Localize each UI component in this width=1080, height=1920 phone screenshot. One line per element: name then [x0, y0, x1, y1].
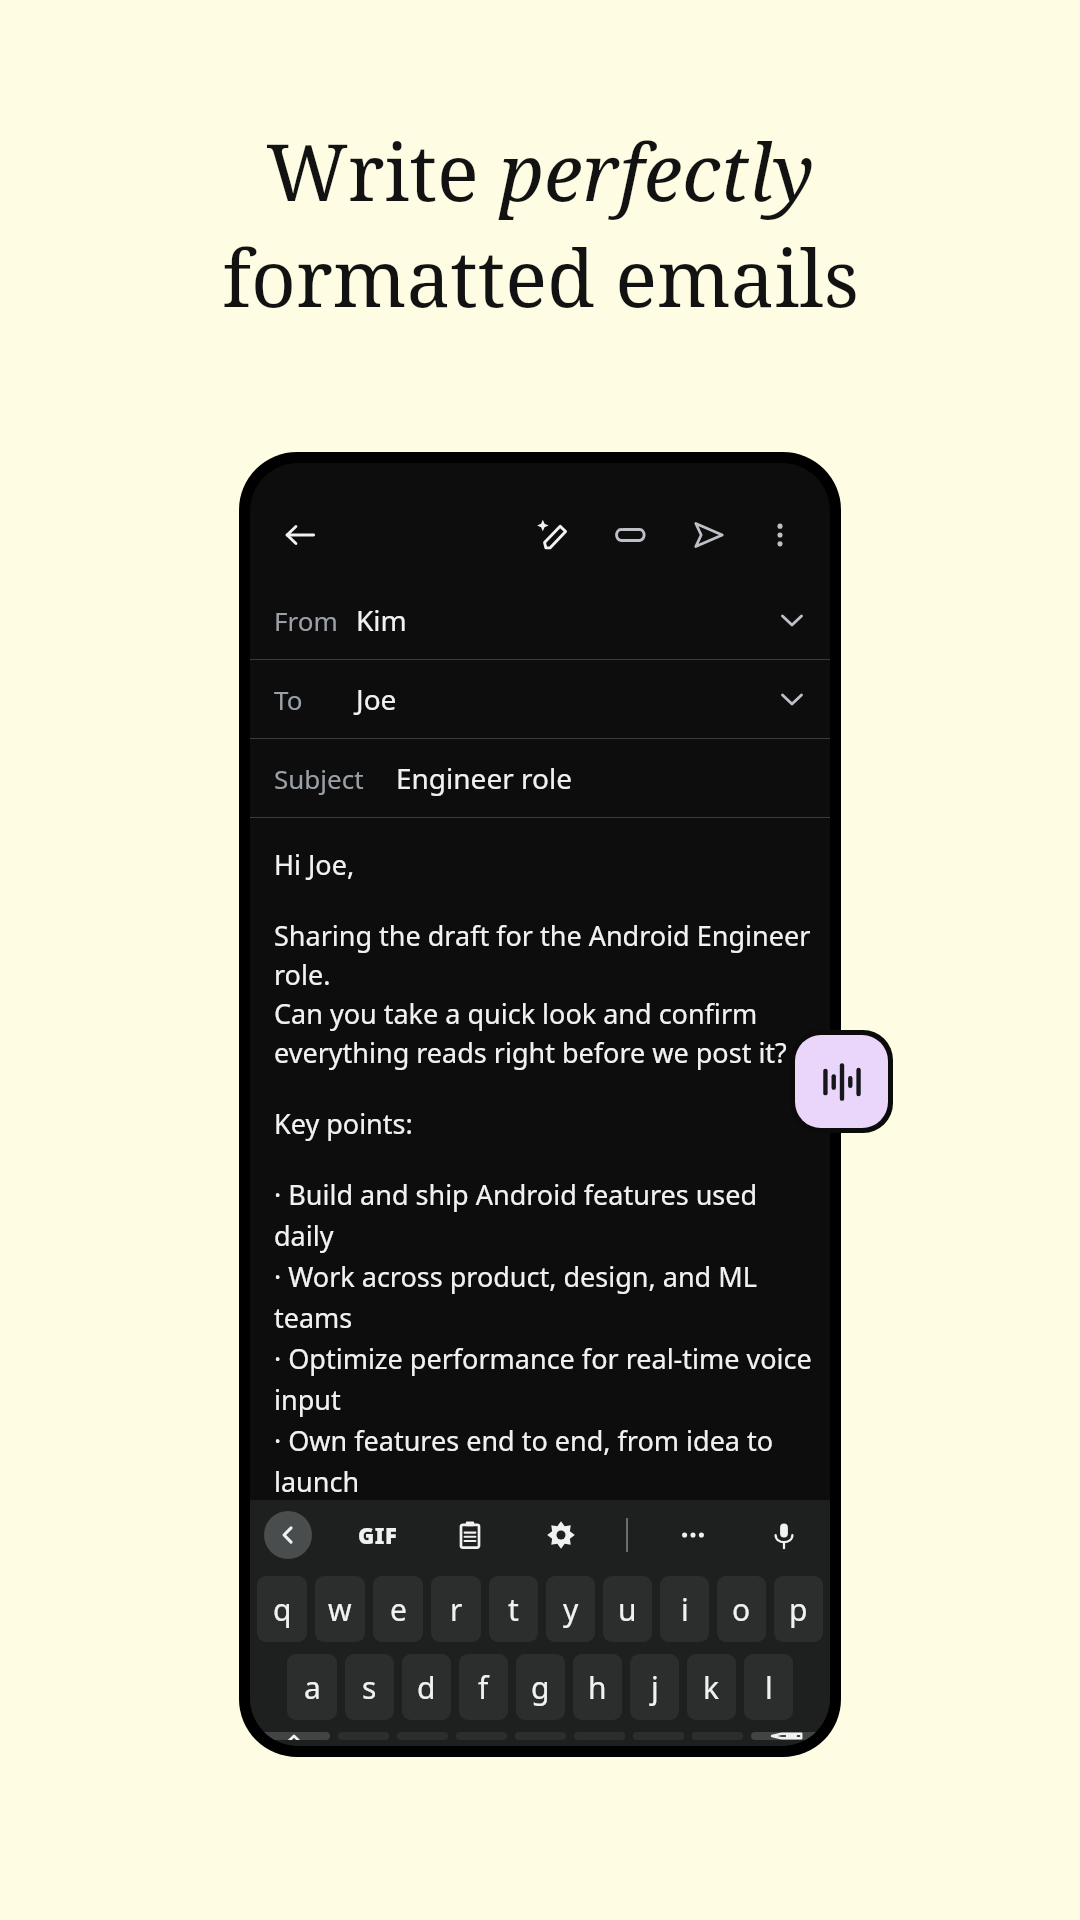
button[interactable]: g — [516, 1654, 565, 1720]
staticText: e — [390, 1589, 407, 1630]
staticText: w — [328, 1589, 352, 1630]
staticText: u — [618, 1589, 637, 1630]
staticText: Key points: — [274, 1105, 413, 1142]
staticText: k — [703, 1667, 720, 1708]
staticText: Hi Joe, — [274, 846, 355, 883]
button[interactable]: h — [573, 1654, 622, 1720]
staticText: y — [563, 1589, 579, 1630]
staticText: p — [789, 1589, 808, 1630]
button[interactable]: Clipboard — [444, 1509, 496, 1561]
staticText: GIF — [358, 1520, 398, 1550]
staticText: d — [417, 1667, 436, 1708]
button[interactable]: From — [250, 581, 830, 659]
staticText: h — [588, 1667, 607, 1708]
button[interactable]: q — [257, 1576, 307, 1642]
button[interactable]: j — [630, 1654, 679, 1720]
button[interactable]: Shift — [257, 1732, 330, 1740]
button[interactable]: d — [402, 1654, 451, 1720]
staticText: To — [274, 682, 303, 717]
button[interactable]: f — [459, 1654, 508, 1720]
button[interactable]: More — [667, 1509, 719, 1561]
staticText: Kim — [356, 601, 407, 639]
button[interactable]: Attach — [602, 507, 658, 563]
staticText: t — [508, 1589, 519, 1630]
button[interactable]: o — [717, 1576, 766, 1642]
staticText: Engineer role — [396, 759, 573, 797]
staticText: f — [478, 1667, 489, 1708]
staticText: a — [304, 1667, 321, 1708]
button[interactable]: More options — [752, 507, 808, 563]
button[interactable]: Collapse toolbar — [264, 1511, 312, 1559]
staticText: j — [651, 1667, 659, 1708]
button[interactable]: AI compose — [524, 507, 580, 563]
button[interactable]: u — [603, 1576, 652, 1642]
button[interactable]: e — [373, 1576, 423, 1642]
staticText: g — [531, 1667, 550, 1708]
button[interactable]: l — [744, 1654, 793, 1720]
button[interactable]: s — [345, 1654, 394, 1720]
staticText: l — [765, 1667, 773, 1708]
button[interactable]: Subject — [250, 739, 830, 817]
staticText: formatted emails — [222, 224, 859, 330]
button[interactable]: r — [431, 1576, 481, 1642]
button[interactable]: k — [687, 1654, 736, 1720]
button[interactable]: Backspace — [751, 1732, 823, 1740]
button[interactable]: To — [250, 660, 830, 738]
button[interactable]: Settings — [535, 1509, 587, 1561]
button[interactable]: y — [546, 1576, 595, 1642]
button[interactable]: t — [489, 1576, 538, 1642]
button[interactable]: a — [287, 1654, 337, 1720]
button[interactable]: p — [774, 1576, 823, 1642]
staticText: r — [450, 1589, 463, 1630]
button[interactable]: Voice waveform — [795, 1035, 888, 1128]
button[interactable]: Send — [680, 507, 736, 563]
staticText: Sharing the draft for the Android Engine… — [274, 917, 814, 1071]
button[interactable]: Back — [272, 507, 328, 563]
button[interactable]: i — [660, 1576, 709, 1642]
staticText: Subject — [274, 761, 364, 796]
staticText: i — [681, 1589, 689, 1630]
staticText: Joe — [356, 680, 397, 718]
button[interactable]: GIF — [351, 1508, 405, 1562]
staticText: q — [273, 1589, 292, 1630]
button[interactable]: w — [315, 1576, 365, 1642]
button[interactable]: Voice input — [758, 1509, 810, 1561]
staticText: o — [732, 1589, 751, 1630]
staticText: From — [274, 603, 338, 638]
staticText: Write perfectly — [266, 118, 814, 224]
staticText: s — [362, 1667, 377, 1708]
staticText: · Build and ship Android features used d… — [274, 1176, 814, 1500]
